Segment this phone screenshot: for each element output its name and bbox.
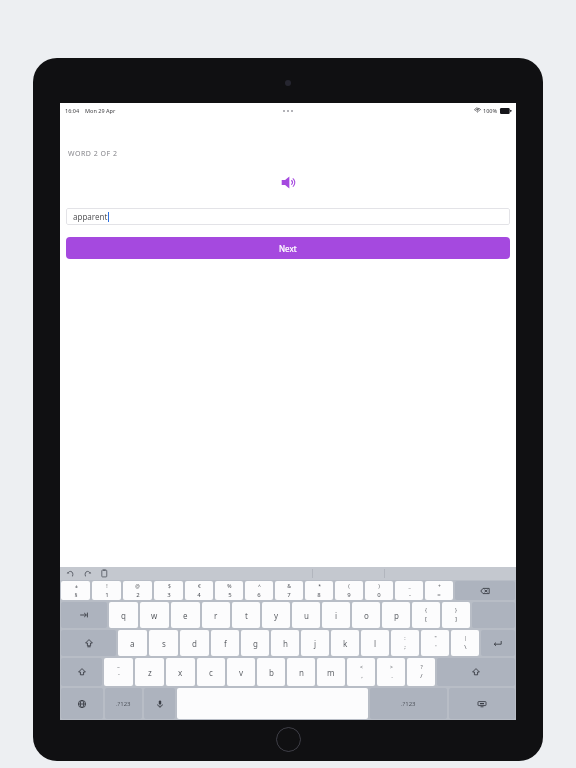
staticText: 3 (167, 591, 171, 599)
button[interactable]: Home (276, 727, 301, 752)
button[interactable]: kbd (449, 688, 515, 719)
staticText: o (364, 610, 369, 621)
staticText: t (245, 610, 248, 621)
staticText: v (239, 667, 244, 678)
button[interactable]: ^ (245, 581, 273, 600)
button[interactable]: p (382, 602, 410, 628)
staticText: | (464, 635, 467, 642)
staticText: i (335, 610, 338, 621)
button[interactable]: € (185, 581, 213, 600)
button[interactable]: i (322, 602, 350, 628)
button[interactable]: : (391, 630, 419, 656)
staticText: 4 (197, 591, 201, 599)
button[interactable]: s (149, 630, 178, 656)
staticText: , (361, 672, 363, 680)
button[interactable]: .?123 (105, 688, 142, 719)
staticText: \ (464, 643, 467, 651)
staticText: ' (435, 643, 437, 651)
staticText: ( (348, 583, 350, 590)
button[interactable]: mic (144, 688, 175, 719)
button[interactable]: * (305, 581, 333, 600)
button[interactable]: ) (365, 581, 393, 600)
button[interactable]: enter (481, 630, 515, 656)
staticText: l (374, 638, 377, 649)
staticText: e (183, 610, 188, 621)
button[interactable]: t (232, 602, 260, 628)
button[interactable]: a (118, 630, 147, 656)
staticText: & (287, 583, 291, 590)
button[interactable]: u (292, 602, 320, 628)
staticText: ~ (117, 664, 120, 671)
button[interactable]: apparent (66, 208, 510, 225)
button[interactable]: .?123 (370, 688, 447, 719)
button[interactable]: b (257, 658, 285, 686)
button[interactable]: + (425, 581, 453, 600)
button[interactable]: ( (335, 581, 363, 600)
button[interactable]: } (442, 602, 470, 628)
button[interactable]: shift (61, 658, 102, 686)
staticText: ^ (258, 583, 261, 590)
button[interactable]: " (421, 630, 449, 656)
button[interactable]: Play pronunciation (275, 169, 301, 195)
staticText: % (227, 583, 232, 590)
button[interactable]: _ (395, 581, 423, 600)
button[interactable]: m (317, 658, 345, 686)
button[interactable]: v (227, 658, 255, 686)
staticText: Next (279, 243, 297, 254)
button[interactable]: f (211, 630, 239, 656)
button[interactable]: y (262, 602, 290, 628)
staticText: @ (135, 583, 140, 590)
staticText: § (74, 591, 78, 599)
button[interactable]: $ (154, 581, 183, 600)
staticText: ` (118, 672, 120, 680)
button[interactable]: c (197, 658, 225, 686)
button[interactable]: z (135, 658, 164, 686)
button[interactable]: < (347, 658, 375, 686)
button[interactable]: k (331, 630, 359, 656)
button[interactable]: % (215, 581, 243, 600)
staticText: _ (408, 583, 411, 590)
button[interactable]: ! (92, 581, 121, 600)
button[interactable]: tab (61, 602, 107, 628)
button[interactable]: d (180, 630, 209, 656)
button[interactable]: Next (66, 237, 510, 259)
staticText: 7 (287, 591, 291, 599)
button[interactable]: x (166, 658, 195, 686)
button[interactable]: caps (61, 630, 116, 656)
button[interactable]: r (202, 602, 230, 628)
button[interactable]: w (140, 602, 169, 628)
button[interactable]: ~ (104, 658, 133, 686)
staticText: ? (420, 664, 423, 671)
button[interactable]: > (377, 658, 405, 686)
staticText: - (409, 591, 411, 599)
button[interactable]: @ (123, 581, 152, 600)
button[interactable]: globe (61, 688, 103, 719)
button[interactable]: e (171, 602, 200, 628)
button[interactable]: l (361, 630, 389, 656)
button[interactable]: ? (407, 658, 435, 686)
staticText: h (283, 638, 288, 649)
button[interactable]: backspace (455, 581, 515, 600)
staticText: ± (75, 583, 78, 590)
staticText: 5 (228, 591, 232, 599)
button[interactable]: shift (437, 658, 515, 686)
staticText: b (269, 667, 274, 678)
button[interactable]: o (352, 602, 380, 628)
button[interactable]: undo (66, 569, 75, 578)
button[interactable]: j (301, 630, 329, 656)
button[interactable]: paste (100, 569, 109, 578)
button[interactable]: h (271, 630, 299, 656)
button[interactable]: & (275, 581, 303, 600)
staticText: 0 (377, 591, 381, 599)
button[interactable]: { (412, 602, 440, 628)
button[interactable]: g (241, 630, 269, 656)
staticText: Mon 29 Apr (85, 107, 116, 114)
button[interactable]: n (287, 658, 315, 686)
button[interactable]: q (109, 602, 138, 628)
button[interactable]: ± (61, 581, 90, 600)
staticText: g (253, 638, 258, 649)
button[interactable]: | (451, 630, 479, 656)
button[interactable]: redo (83, 569, 92, 578)
